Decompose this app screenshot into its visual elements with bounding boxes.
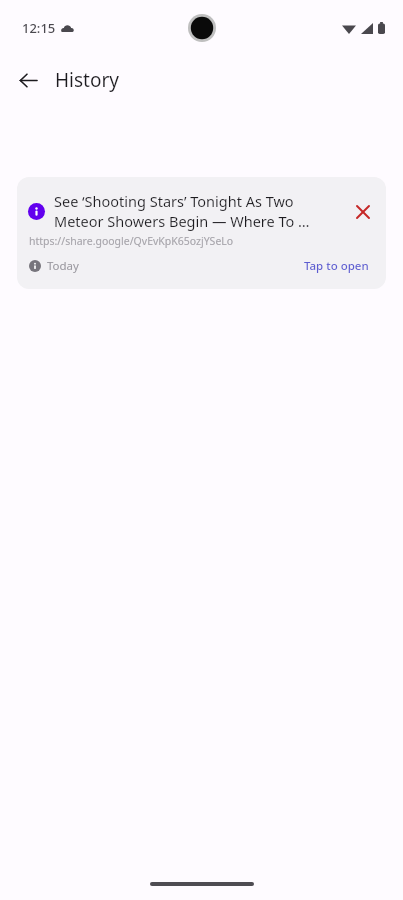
button[interactable]: Remove <box>346 195 380 229</box>
staticText: 12:15 <box>22 19 56 37</box>
button[interactable]: Back <box>10 62 46 98</box>
button[interactable]: Tap to open <box>302 256 371 276</box>
staticText: History <box>55 67 119 93</box>
staticText: Today <box>47 258 79 274</box>
staticText: https://share.google/QvEvKpK65ozjYSeLo <box>29 234 234 248</box>
staticText: Tap to open <box>304 258 369 274</box>
button[interactable]: See ‘Shooting Stars’ Tonight As Two Mete… <box>17 177 386 289</box>
staticText: See ‘Shooting Stars’ Tonight As Two Mete… <box>54 191 342 232</box>
